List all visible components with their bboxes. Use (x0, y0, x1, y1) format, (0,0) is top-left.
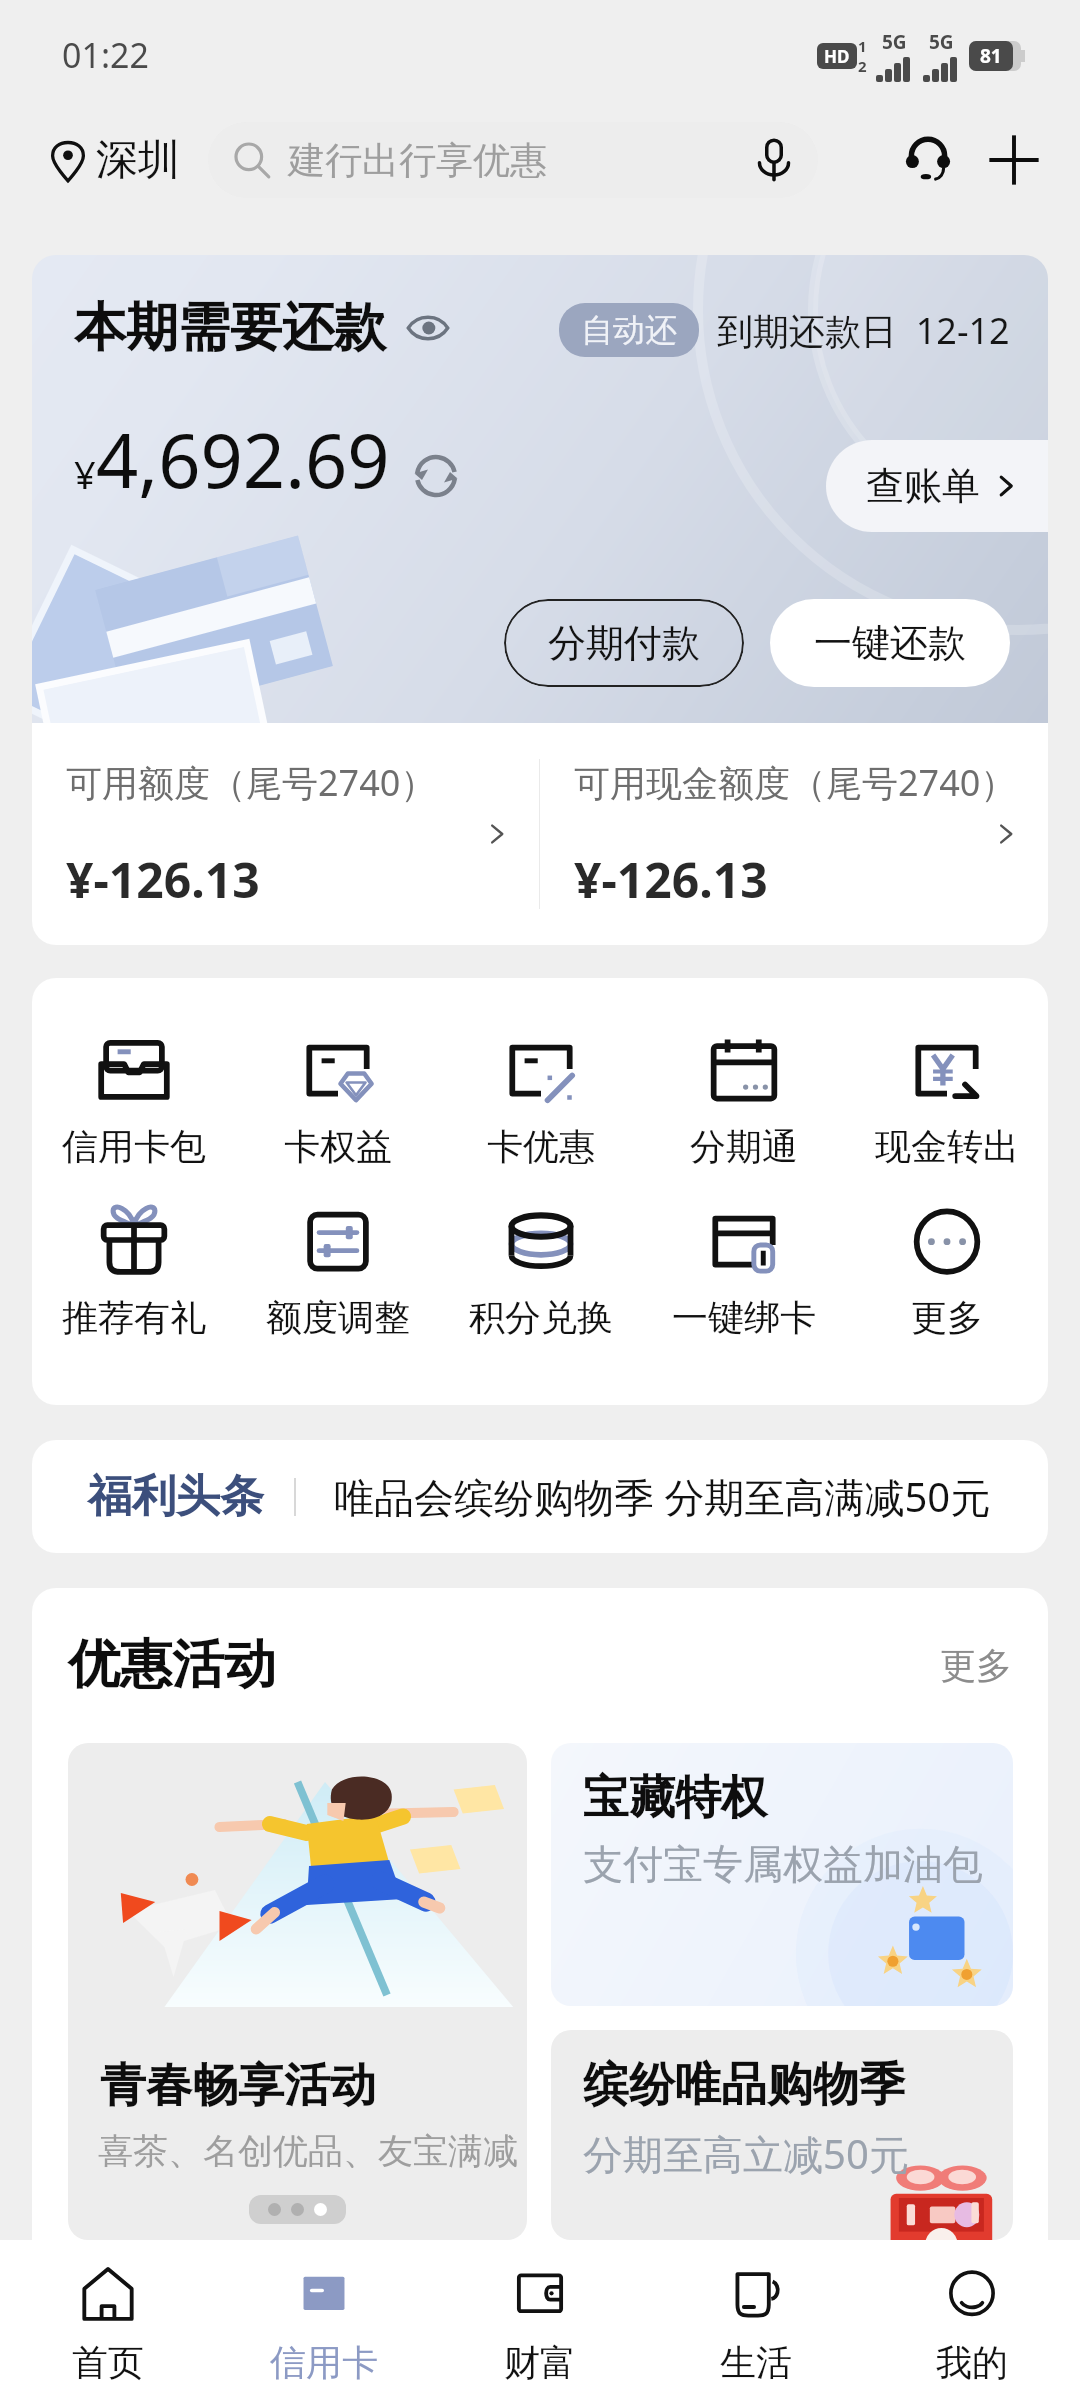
staticText: 分期通 (690, 1124, 798, 1169)
button[interactable]: 推荐有礼 (32, 1199, 236, 1340)
staticText: 5G (882, 29, 907, 55)
staticText: 优惠活动 (68, 1632, 276, 1698)
staticText: 可用额度（尾号2740） (66, 758, 437, 807)
staticText: 深圳 (96, 134, 180, 187)
staticText: 更多 (940, 1643, 1012, 1688)
staticText: 81 (980, 43, 1002, 69)
staticText: 查账单 (866, 462, 980, 510)
button[interactable]: 分期通 (642, 1028, 845, 1169)
button[interactable]: Toggle visibility (406, 306, 450, 350)
button[interactable]: 缤纷唯品购物季 (551, 2030, 1013, 2240)
button[interactable]: 建行出行享优惠 (208, 122, 818, 198)
staticText: 缤纷唯品购物季 (583, 2056, 905, 2114)
button[interactable]: 财富 (432, 2240, 648, 2400)
staticText: 到期还款日 12-12 (717, 306, 1010, 355)
staticText: 首页 (72, 2340, 144, 2385)
button[interactable]: 一键绑卡 (642, 1199, 845, 1340)
button[interactable]: 一键还款 (770, 599, 1010, 687)
staticText: ¥-126.13 (574, 847, 768, 912)
other: Voice search (752, 138, 796, 182)
button[interactable]: 分期付款 (504, 599, 744, 687)
staticText: 卡权益 (284, 1124, 392, 1169)
staticText: 喜茶、名创优品、友宝满减 (98, 2129, 518, 2173)
button[interactable]: 卡优惠 (439, 1028, 642, 1169)
button[interactable]: 额度调整 (236, 1199, 439, 1340)
staticText: 自动还 (581, 310, 677, 350)
button[interactable]: Customer service (898, 130, 958, 190)
staticText: 财富 (504, 2340, 576, 2385)
staticText: 积分兑换 (469, 1295, 613, 1340)
staticText: ¥-126.13 (66, 847, 260, 912)
staticText: 现金转出 (875, 1124, 1019, 1169)
staticText: 一键绑卡 (672, 1295, 816, 1340)
button[interactable]: Add (984, 130, 1044, 190)
button[interactable]: 查账单 (826, 440, 1048, 532)
button[interactable]: 福利头条 (32, 1440, 1048, 1553)
button[interactable]: 卡权益 (236, 1028, 439, 1169)
button[interactable]: Refresh (410, 450, 462, 502)
button[interactable]: 积分兑换 (439, 1199, 642, 1340)
button[interactable]: 信用卡 (216, 2240, 432, 2400)
button[interactable]: 首页 (0, 2240, 216, 2400)
staticText: 1 (858, 36, 867, 56)
staticText: HD (824, 45, 850, 68)
staticText: 我的 (936, 2340, 1008, 2385)
staticText: 推荐有礼 (62, 1295, 206, 1340)
staticText: 建行出行享优惠 (288, 137, 547, 184)
staticText: 更多 (911, 1295, 983, 1340)
staticText: 5G (929, 29, 954, 55)
staticText: ¥ (74, 448, 96, 500)
button[interactable]: 生活 (648, 2240, 864, 2400)
staticText: 01:22 (62, 32, 149, 78)
staticText: 信用卡 (270, 2340, 378, 2385)
staticText: 青春畅享活动 (100, 2057, 376, 2115)
staticText: 唯品会缤纷购物季 分期至高满减50元 (334, 1469, 991, 1524)
button[interactable]: 更多 (845, 1199, 1048, 1340)
button[interactable]: 青春畅享活动 (68, 1743, 527, 2240)
staticText: 一键还款 (814, 619, 966, 667)
button[interactable]: 深圳 (46, 134, 180, 187)
staticText: 4,692.69 (96, 409, 390, 510)
staticText: 分期至高立减50元 (583, 2126, 909, 2181)
staticText: 卡优惠 (487, 1124, 595, 1169)
staticText: 分期付款 (548, 619, 700, 667)
staticText: 生活 (720, 2340, 792, 2385)
button[interactable]: 更多 (940, 1643, 1012, 1688)
staticText: 本期需要还款 (74, 295, 386, 361)
button[interactable]: 宝藏特权 (551, 1743, 1013, 2006)
button[interactable]: 信用卡包 (32, 1028, 236, 1169)
button[interactable]: 可用现金额度（尾号2740） (540, 723, 1048, 945)
staticText: 支付宝专属权益加油包 (583, 1839, 983, 1889)
staticText: 额度调整 (266, 1295, 410, 1340)
button[interactable]: 自动还 (559, 303, 699, 357)
button[interactable]: 可用额度（尾号2740） (32, 723, 539, 945)
staticText: 福利头条 (88, 1469, 264, 1524)
button[interactable]: 我的 (864, 2240, 1080, 2400)
staticText: 宝藏特权 (583, 1769, 767, 1827)
staticText: 可用现金额度（尾号2740） (574, 758, 1017, 807)
staticText: 信用卡包 (62, 1124, 206, 1169)
staticText: 2 (858, 56, 867, 76)
button[interactable]: 现金转出 (845, 1028, 1048, 1169)
